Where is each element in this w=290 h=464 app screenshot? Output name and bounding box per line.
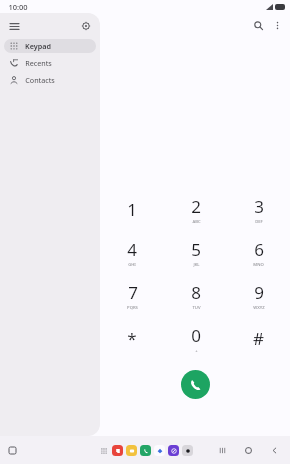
button[interactable]: Search [250,17,266,33]
staticText: 3 [254,195,264,218]
button[interactable]: 5 [164,231,227,274]
button[interactable]: # [227,317,290,360]
staticText: PQRS [127,305,138,311]
staticText: Keypad [25,41,51,51]
staticText: 5 [191,238,201,261]
button[interactable]: App [168,445,179,456]
button[interactable]: 8 [164,274,227,317]
button[interactable]: * [100,317,164,360]
button[interactable]: App [154,445,165,456]
staticText: 2 [191,195,201,218]
button[interactable]: More options [269,17,285,33]
staticText: 8 [191,281,201,304]
button[interactable]: App [182,445,193,456]
button[interactable]: App [112,445,123,456]
button[interactable]: 6 [227,231,290,274]
staticText: DEF [255,219,263,225]
staticText: JKL [193,262,200,268]
staticText: TUV [192,305,201,311]
staticText: ABC [192,219,201,225]
button[interactable]: Settings [79,19,93,33]
button[interactable]: Home [240,442,256,458]
staticText: * [127,327,137,350]
button[interactable]: Back [266,442,282,458]
staticText: 9 [254,281,264,304]
button[interactable]: App [126,445,137,456]
button[interactable]: Keypad [4,39,96,53]
button[interactable]: 9 [227,274,290,317]
staticText: + [195,348,198,354]
button[interactable]: Menu [7,19,21,33]
button[interactable]: Recent apps [214,442,230,458]
staticText: 1 [127,198,137,221]
staticText: WXYZ [253,305,265,311]
button[interactable]: Notifications [6,444,18,456]
staticText: 4 [127,238,137,261]
staticText: 0 [191,324,201,347]
button[interactable]: 0 [164,317,227,360]
button[interactable]: Recents [4,56,96,70]
staticText: 7 [128,281,138,304]
staticText: Recents [25,58,52,68]
button[interactable]: 7 [100,274,164,317]
staticText: GHI [128,262,136,268]
button[interactable]: All apps [98,445,109,456]
staticText: 6 [254,238,264,261]
button[interactable]: Contacts [4,73,96,87]
staticText: MNO [253,262,264,268]
staticText: # [253,327,264,350]
button[interactable]: 4 [100,231,164,274]
button[interactable]: App [140,445,151,456]
staticText: Contacts [25,75,55,85]
button[interactable]: 1 [100,188,164,231]
button[interactable]: 3 [227,188,290,231]
button[interactable]: Call [181,370,210,399]
staticText: 10:00 [8,2,28,12]
button[interactable]: 2 [164,188,227,231]
